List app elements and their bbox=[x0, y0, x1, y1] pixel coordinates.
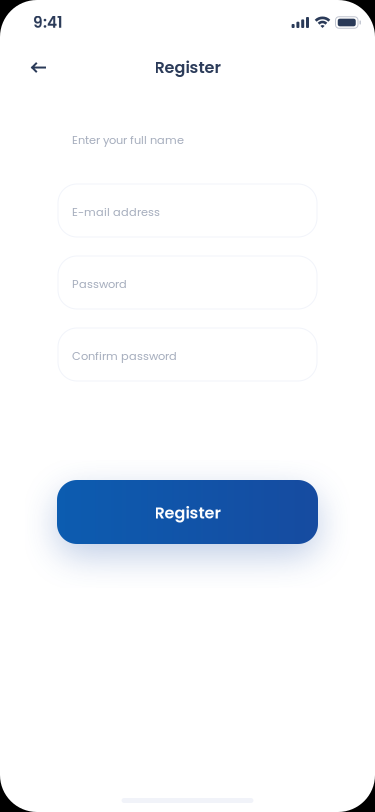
staticText: E-mail address bbox=[72, 204, 160, 220]
staticText: Register bbox=[154, 502, 220, 524]
staticText: Enter your full name bbox=[72, 132, 184, 148]
button[interactable]: Register bbox=[57, 480, 318, 544]
button[interactable]: Back bbox=[16, 45, 60, 89]
staticText: Password bbox=[72, 276, 127, 292]
staticText: Register bbox=[154, 56, 220, 79]
staticText: Confirm password bbox=[72, 348, 177, 364]
staticText: 9:41 bbox=[33, 12, 63, 33]
